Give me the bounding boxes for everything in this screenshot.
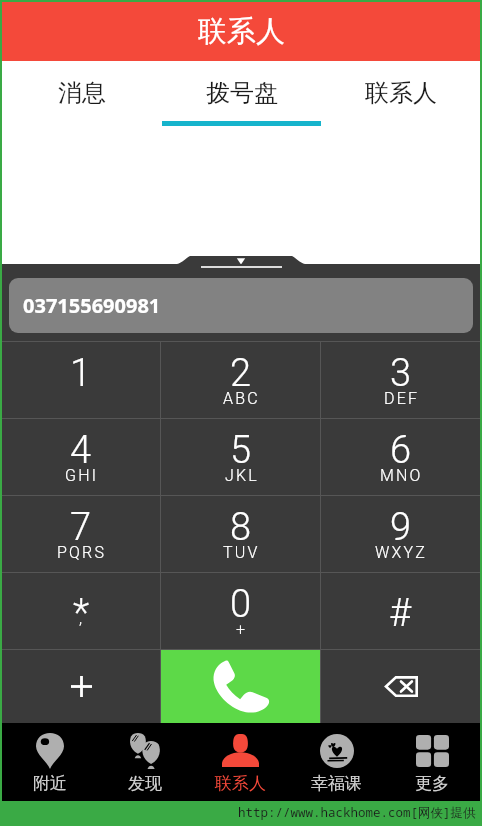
button[interactable]: 3 [321,342,480,418]
button[interactable]: * [2,573,160,649]
staticText: DEF [384,389,420,408]
button[interactable]: 0 [161,573,320,649]
staticText: 037155690981 [23,292,161,319]
staticText: http://www.hackhome.com[网侠]提供 [238,804,476,821]
staticText: 消息 [58,78,106,108]
staticText: 1 [70,351,92,396]
button[interactable]: 8 [161,496,320,572]
staticText: 联系人 [198,13,285,50]
button[interactable]: 幸福课 [288,723,384,801]
staticText: * [73,591,90,636]
staticText: 附近 [33,773,67,794]
button[interactable]: 联系人 [321,61,480,127]
staticText: 0 [230,582,252,627]
button[interactable]: 7 [2,496,160,572]
staticText: 联系人 [365,78,437,108]
button[interactable]: 发现 [97,723,192,801]
staticText: 联系人 [215,773,266,794]
staticText: + [236,620,248,639]
staticText: 6 [390,428,412,473]
staticText: JKL [225,466,259,485]
staticText: 2 [230,351,252,396]
button[interactable]: 9 [321,496,480,572]
button[interactable]: Call [161,650,320,723]
staticText: # [389,591,412,636]
staticText: GHI [65,466,99,485]
staticText: 更多 [415,773,449,794]
button[interactable]: # [321,573,480,649]
staticText: , [79,609,85,628]
staticText: 拨号盘 [206,78,278,108]
staticText: 9 [390,505,412,550]
button[interactable]: 附近 [2,723,97,801]
staticText: 发现 [128,773,162,794]
staticText: 8 [230,505,252,550]
staticText: MNO [380,466,423,485]
button[interactable]: 6 [321,419,480,495]
staticText: 5 [230,428,252,473]
button[interactable]: 5 [161,419,320,495]
staticText: TUV [223,543,260,562]
button[interactable]: 4 [2,419,160,495]
button[interactable]: 2 [161,342,320,418]
staticText: PQRS [57,543,107,562]
staticText: 7 [70,505,92,550]
staticText: 幸福课 [311,773,362,794]
button[interactable]: 联系人 [192,723,288,801]
button[interactable]: Plus [2,650,160,723]
button[interactable]: 037155690981 [9,278,473,333]
button[interactable]: 消息 [2,61,162,127]
staticText: 4 [70,428,92,473]
staticText: 3 [390,351,412,396]
button[interactable]: 拨号盘 [162,61,321,127]
staticText: ABC [223,389,260,408]
button[interactable]: 更多 [384,723,480,801]
button[interactable]: 1 [2,342,160,418]
button[interactable]: Delete [321,650,480,723]
staticText: WXYZ [375,543,428,562]
